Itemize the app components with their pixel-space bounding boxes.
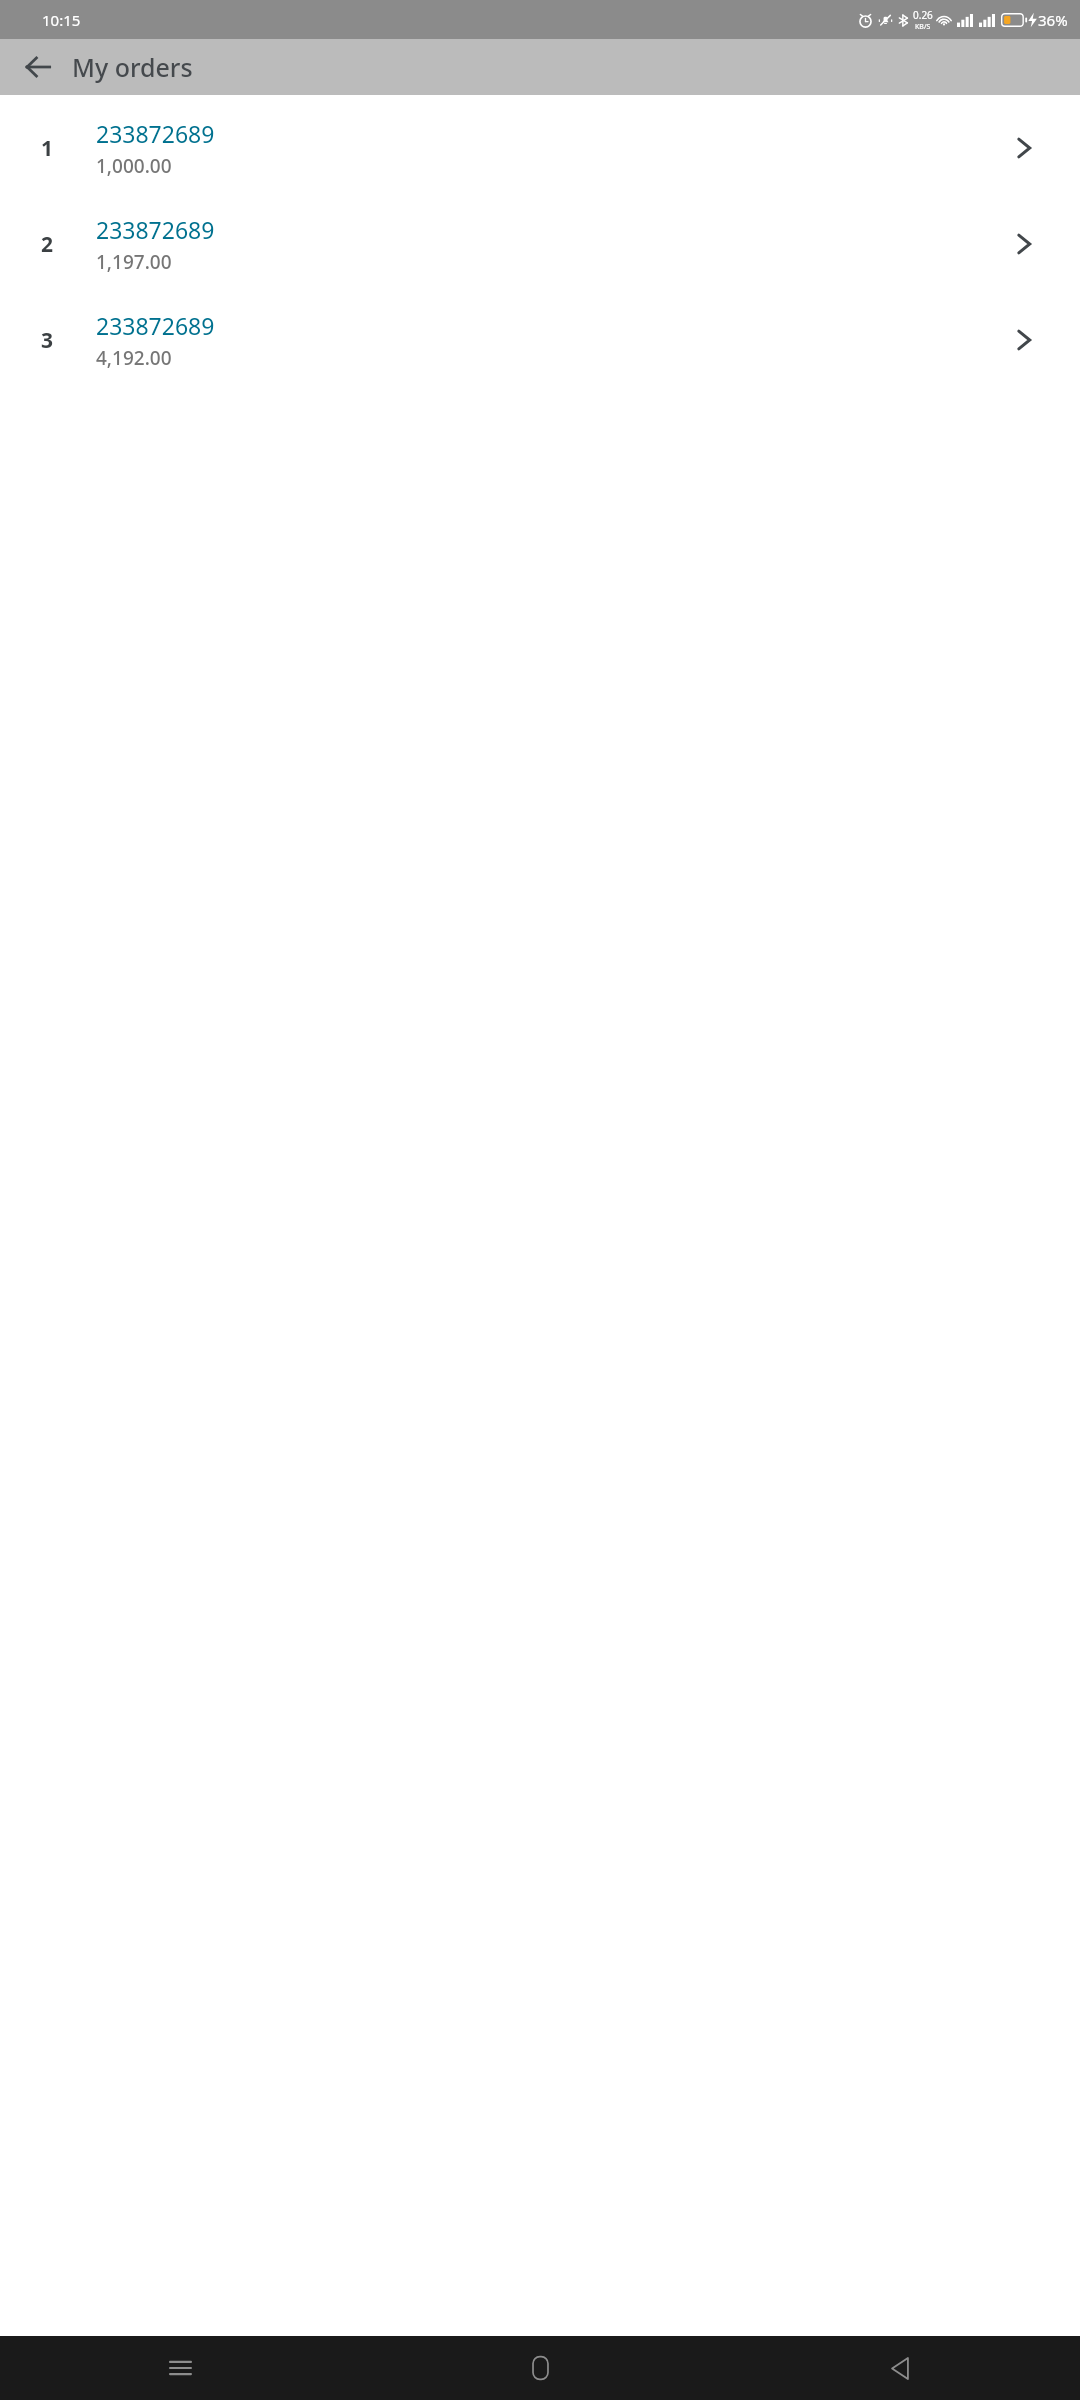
staticText: 2 bbox=[41, 230, 54, 259]
staticText: 233872689 bbox=[96, 310, 215, 341]
button[interactable]: Home bbox=[360, 2336, 720, 2400]
staticText: KB/S bbox=[915, 22, 931, 32]
staticText: 10:15 bbox=[42, 10, 81, 30]
staticText: 233872689 bbox=[96, 118, 215, 149]
staticText: 36% bbox=[1038, 10, 1068, 30]
button[interactable]: 3 bbox=[0, 304, 1080, 376]
staticText: 233872689 bbox=[96, 214, 215, 245]
staticText: My orders bbox=[72, 50, 193, 84]
staticText: 1,000.00 bbox=[96, 153, 172, 179]
staticText: 1,197.00 bbox=[96, 249, 172, 275]
button[interactable]: Back bbox=[720, 2336, 1080, 2400]
staticText: 3 bbox=[41, 326, 54, 355]
button[interactable]: Recent apps bbox=[0, 2336, 360, 2400]
button[interactable]: 1 bbox=[0, 112, 1080, 184]
button[interactable]: 2 bbox=[0, 208, 1080, 280]
staticText: 0.26 bbox=[913, 8, 933, 22]
button[interactable]: Back bbox=[10, 39, 66, 95]
staticText: 1 bbox=[41, 134, 54, 163]
staticText: 4,192.00 bbox=[96, 345, 172, 371]
